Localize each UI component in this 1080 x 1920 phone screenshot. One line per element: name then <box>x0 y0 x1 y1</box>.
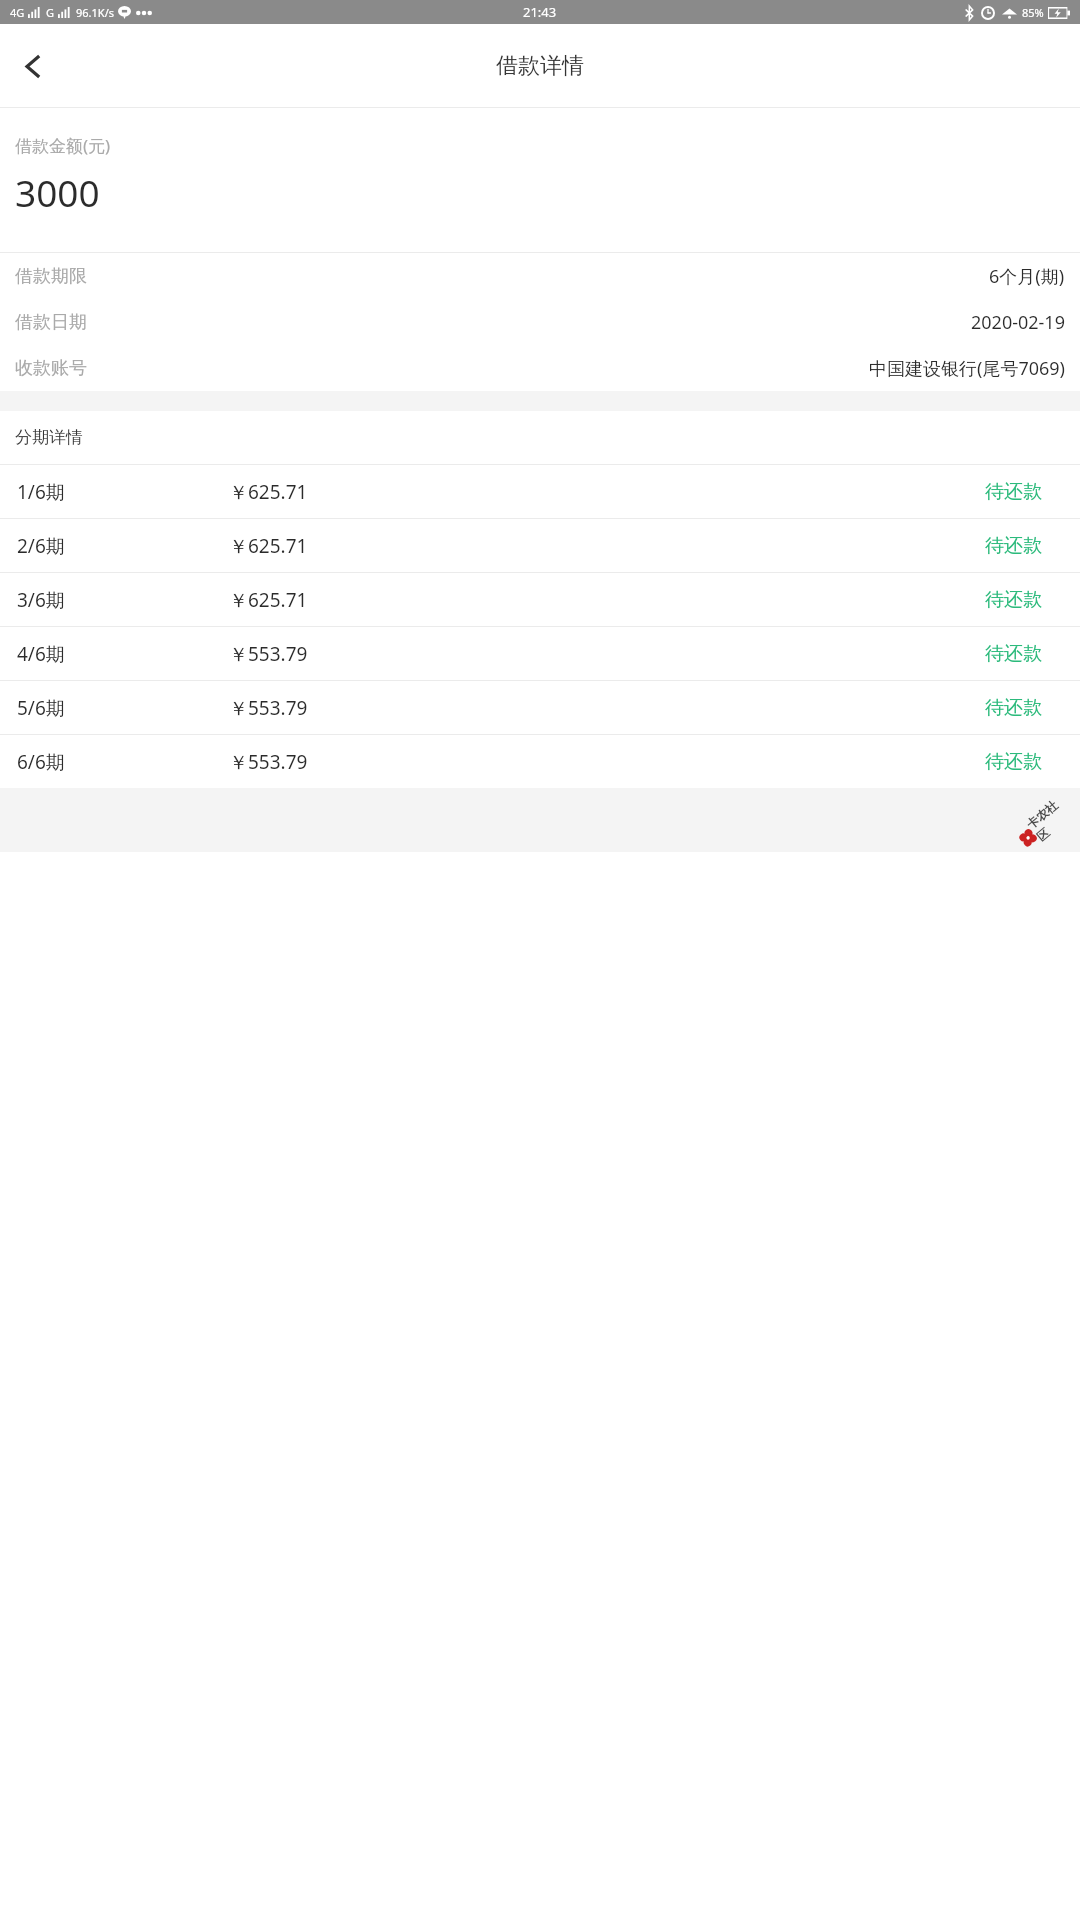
button[interactable]: 6/6期 <box>0 735 1080 788</box>
staticText: 3/6期 <box>17 587 65 613</box>
staticText: 4G <box>10 5 25 20</box>
staticText: ￥553.79 <box>229 749 308 775</box>
staticText: G <box>46 5 55 20</box>
staticText: ￥553.79 <box>229 695 308 721</box>
staticText: 待还款 <box>985 750 1063 774</box>
staticText: 待还款 <box>985 642 1063 666</box>
staticText: ￥553.79 <box>229 641 308 667</box>
staticText: 1/6期 <box>17 479 65 505</box>
button[interactable]: 3/6期 <box>0 573 1080 626</box>
staticText: 4/6期 <box>17 641 65 667</box>
button[interactable]: 收款账号 <box>0 345 1080 391</box>
staticText: 2/6期 <box>17 533 65 559</box>
staticText: 卡农社区 <box>1023 792 1077 845</box>
button[interactable]: 借款期限 <box>0 253 1080 299</box>
button[interactable]: 2/6期 <box>0 519 1080 572</box>
staticText: 借款期限 <box>15 265 87 288</box>
staticText: 待还款 <box>985 696 1063 720</box>
staticText: 3000 <box>15 167 100 217</box>
staticText: 待还款 <box>985 534 1063 558</box>
staticText: 中国建设银行(尾号7069) <box>869 356 1065 381</box>
button[interactable]: 1/6期 <box>0 465 1080 518</box>
staticText: 借款详情 <box>496 52 584 80</box>
staticText: 5/6期 <box>17 695 65 721</box>
staticText: 6/6期 <box>17 749 65 775</box>
staticText: 分期详情 <box>15 427 83 448</box>
staticText: 收款账号 <box>15 357 87 380</box>
staticText: 96.1K/s <box>76 5 114 20</box>
staticText: 借款金额(元) <box>15 134 111 157</box>
button[interactable]: 4/6期 <box>0 627 1080 680</box>
staticText: 6个月(期) <box>989 264 1065 289</box>
staticText: 2020-02-19 <box>971 310 1065 335</box>
staticText: 21:43 <box>523 3 557 21</box>
staticText: 待还款 <box>985 480 1063 504</box>
staticText: ￥625.71 <box>229 587 308 613</box>
staticText: ￥625.71 <box>229 533 308 559</box>
staticText: 待还款 <box>985 588 1063 612</box>
staticText: 借款日期 <box>15 311 87 334</box>
staticText: 85% <box>1022 5 1044 20</box>
staticText: ￥625.71 <box>229 479 308 505</box>
button[interactable]: Back <box>0 34 64 98</box>
button[interactable]: 借款日期 <box>0 299 1080 345</box>
button[interactable]: 5/6期 <box>0 681 1080 734</box>
